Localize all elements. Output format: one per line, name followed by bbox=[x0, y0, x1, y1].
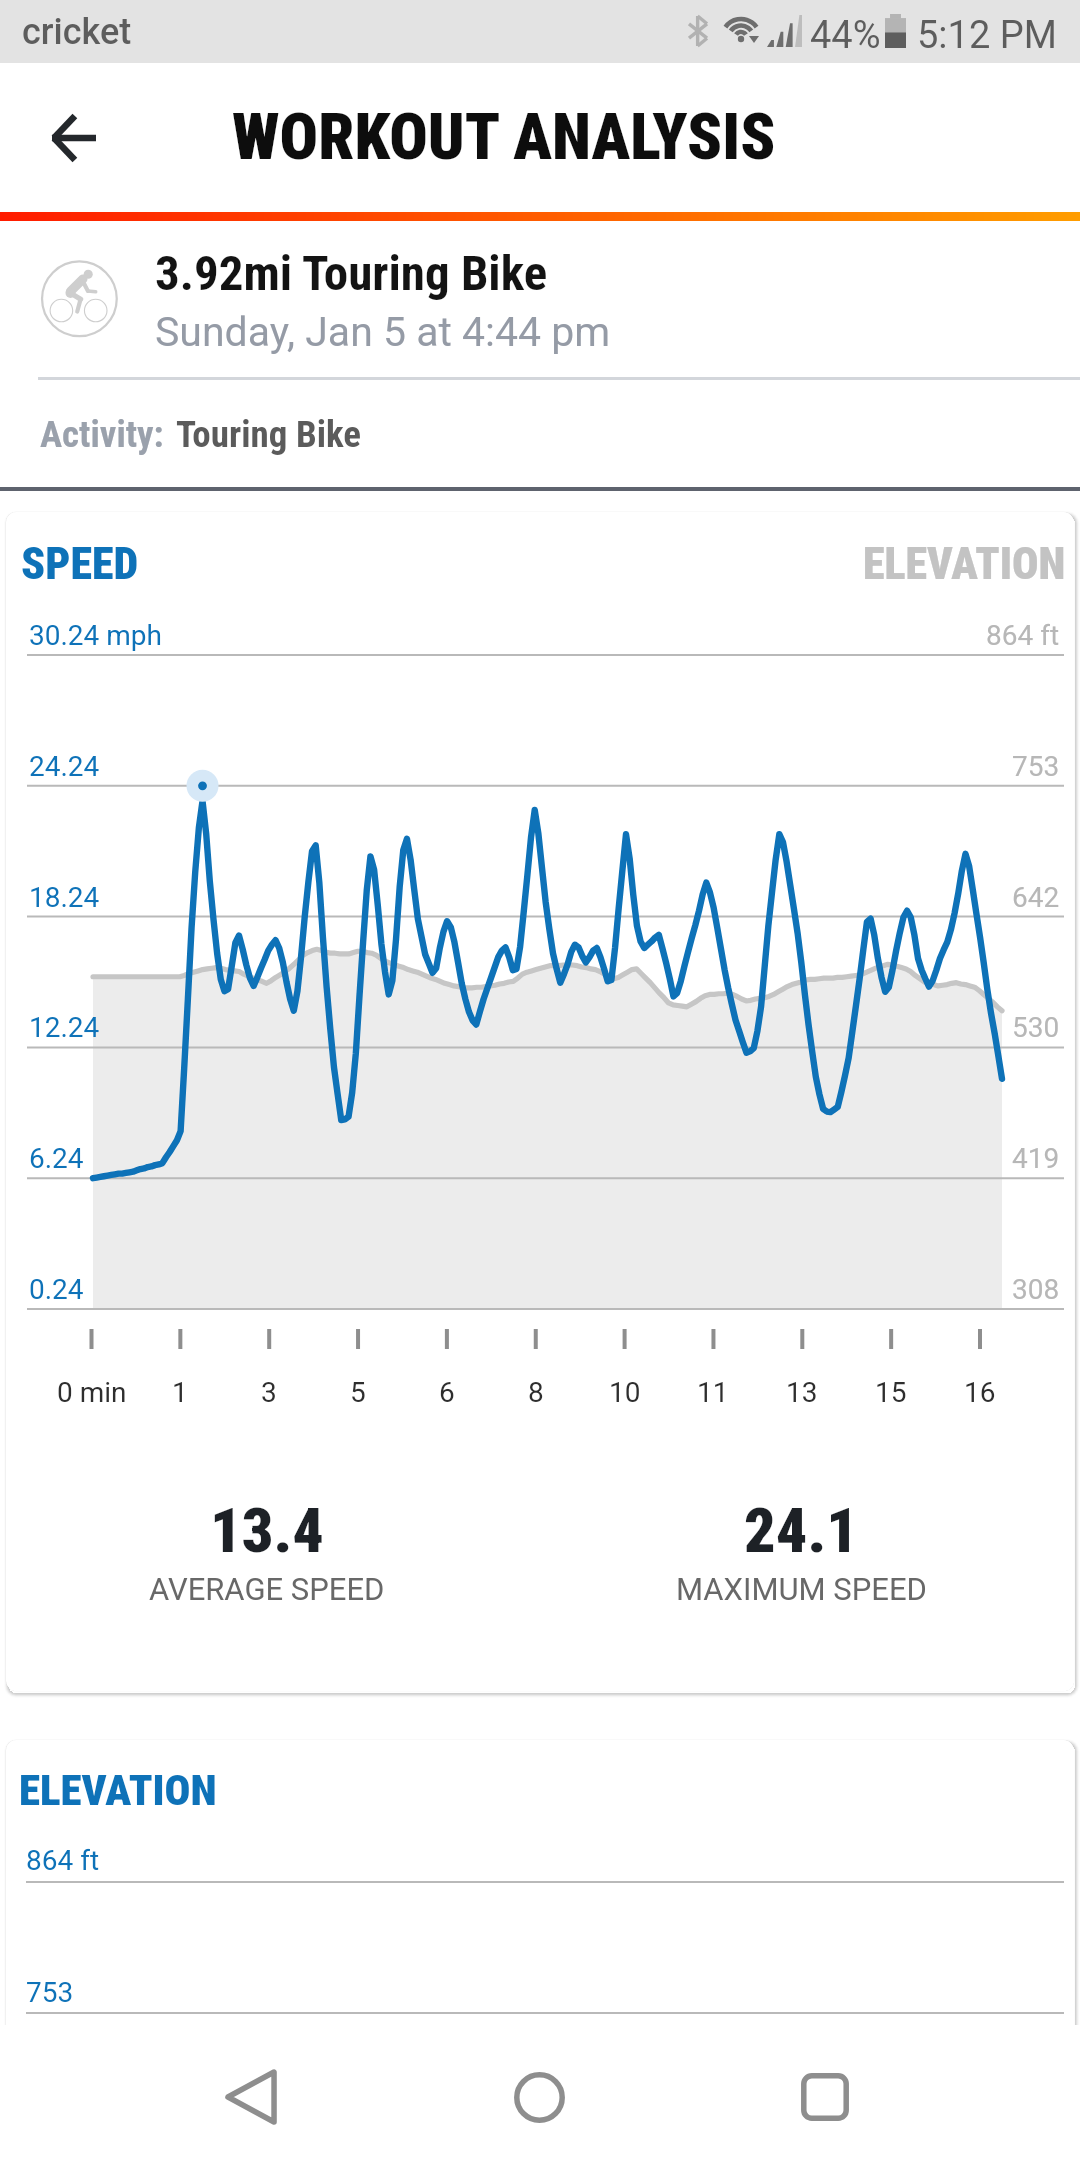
staticText: Activity: bbox=[40, 413, 164, 456]
staticText: AVERAGE SPEED bbox=[149, 1571, 385, 1607]
button[interactable]: SPEED bbox=[6, 512, 1074, 1691]
staticText: 864 ft bbox=[986, 619, 1060, 652]
staticText: 5 bbox=[350, 1376, 366, 1409]
staticText: 3 bbox=[261, 1376, 277, 1409]
button[interactable]: Home bbox=[474, 2032, 604, 2160]
staticText: 5:12 PM bbox=[917, 13, 1057, 58]
staticText: 18.24 bbox=[29, 881, 100, 914]
staticText: ELEVATION bbox=[863, 538, 1066, 590]
staticText: 8 bbox=[528, 1376, 544, 1409]
staticText: 16 bbox=[964, 1376, 996, 1409]
staticText: 419 bbox=[1012, 1142, 1060, 1175]
staticText: 1 bbox=[172, 1376, 188, 1409]
staticText: 24.24 bbox=[29, 750, 100, 783]
button[interactable]: Back bbox=[186, 2032, 316, 2160]
staticText: 24.1 bbox=[744, 1494, 858, 1567]
staticText: 13.4 bbox=[210, 1494, 324, 1567]
staticText: ELEVATION bbox=[19, 1765, 217, 1815]
staticText: 3.92mi Touring Bike bbox=[155, 245, 548, 302]
staticText: 753 bbox=[1012, 750, 1060, 783]
button[interactable]: Back bbox=[26, 90, 122, 186]
staticText: 10 bbox=[609, 1376, 641, 1409]
staticText: 44% bbox=[810, 13, 881, 58]
staticText: 0.24 bbox=[29, 1273, 84, 1306]
button[interactable] bbox=[0, 232, 1080, 380]
staticText: 642 bbox=[1012, 881, 1060, 914]
staticText: 0 min bbox=[57, 1376, 127, 1409]
staticText: 6 bbox=[439, 1376, 455, 1409]
staticText: 13 bbox=[786, 1376, 818, 1409]
staticText: WORKOUT ANALYSIS bbox=[232, 100, 776, 175]
staticText: 530 bbox=[1012, 1011, 1060, 1044]
staticText: 15 bbox=[875, 1376, 907, 1409]
staticText: Sunday, Jan 5 at 4:44 pm bbox=[155, 308, 611, 356]
staticText: 11 bbox=[697, 1376, 729, 1409]
staticText: 30.24 mph bbox=[29, 619, 162, 652]
staticText: 308 bbox=[1012, 1273, 1060, 1306]
staticText: 6.24 bbox=[29, 1142, 84, 1175]
staticText: cricket bbox=[22, 11, 132, 53]
staticText: SPEED bbox=[21, 538, 139, 590]
staticText: 864 ft bbox=[26, 1844, 100, 1877]
staticText: 12.24 bbox=[29, 1011, 100, 1044]
staticText: Touring Bike bbox=[176, 413, 362, 456]
button[interactable]: ELEVATION bbox=[6, 1740, 1074, 2080]
button[interactable]: Activity: bbox=[0, 396, 1080, 472]
button[interactable]: Recent apps bbox=[760, 2032, 890, 2160]
staticText: MAXIMUM SPEED bbox=[676, 1571, 927, 1607]
staticText: 753 bbox=[26, 1976, 74, 2009]
